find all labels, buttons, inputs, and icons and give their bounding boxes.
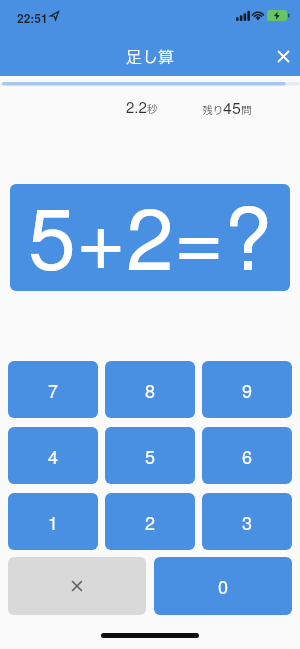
- button[interactable]: 0: [154, 557, 292, 615]
- button[interactable]: [8, 557, 146, 615]
- button[interactable]: 3: [202, 493, 292, 550]
- staticText: 7: [48, 377, 59, 403]
- staticText: 45: [223, 96, 241, 119]
- staticText: 6: [242, 443, 253, 469]
- staticText: 2.2: [126, 96, 147, 117]
- staticText: 3: [242, 509, 253, 535]
- staticText: 5: [145, 443, 156, 469]
- button[interactable]: 1: [8, 493, 98, 550]
- button[interactable]: 4: [8, 427, 98, 484]
- button[interactable]: 2: [105, 493, 195, 550]
- button[interactable]: 5: [105, 427, 195, 484]
- staticText: 残り: [202, 103, 223, 119]
- staticText: 2: [145, 509, 156, 535]
- staticText: 1: [48, 509, 59, 535]
- button[interactable]: 7: [8, 361, 98, 418]
- staticText: 8: [145, 377, 156, 403]
- staticText: 問: [241, 103, 252, 119]
- staticText: 0: [218, 573, 229, 599]
- staticText: 5+2=?: [28, 184, 272, 278]
- button[interactable]: 9: [202, 361, 292, 418]
- staticText: 9: [242, 377, 253, 403]
- button[interactable]: [267, 40, 299, 72]
- staticText: 秒: [147, 102, 158, 118]
- staticText: 足し算: [126, 46, 175, 70]
- staticText: 22:51: [17, 9, 48, 26]
- button[interactable]: 8: [105, 361, 195, 418]
- staticText: 4: [48, 443, 59, 469]
- button[interactable]: 6: [202, 427, 292, 484]
